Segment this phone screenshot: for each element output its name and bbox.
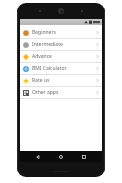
staticText: Rate us <box>32 77 50 84</box>
other: Open <box>96 78 99 83</box>
button[interactable]: Home <box>56 151 66 162</box>
button[interactable]: Intermediate <box>20 39 102 50</box>
other: Open <box>96 42 99 47</box>
button[interactable]: Beginners <box>20 27 102 38</box>
button[interactable]: BMI Calculator <box>20 63 102 74</box>
button[interactable]: Advance <box>20 51 102 62</box>
other: Open <box>96 54 99 59</box>
other: Open <box>96 30 99 35</box>
button[interactable]: Back <box>33 151 43 162</box>
button[interactable]: Rate us <box>20 75 102 86</box>
button[interactable]: Other apps <box>20 87 102 98</box>
other: Open <box>96 66 99 71</box>
staticText: Intermediate <box>32 41 63 48</box>
staticText: Other apps <box>32 89 59 96</box>
button[interactable]: Recent apps <box>79 151 89 162</box>
staticText: Advance <box>32 53 52 60</box>
staticText: Beginners <box>32 29 56 36</box>
other: Open <box>96 90 99 95</box>
staticText: BMI Calculator <box>32 65 67 72</box>
